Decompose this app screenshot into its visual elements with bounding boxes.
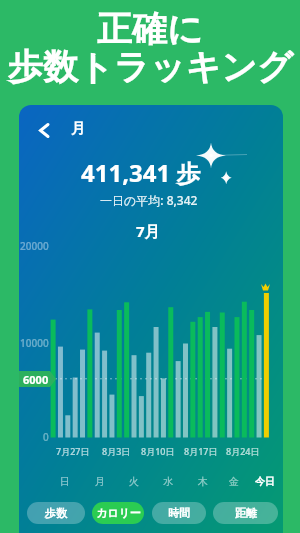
- staticText: 金: [229, 475, 239, 488]
- button[interactable]: 日: [55, 475, 75, 488]
- staticText: 7月: [136, 221, 160, 241]
- staticText: 月: [95, 475, 105, 488]
- staticText: 8月3日: [102, 445, 131, 457]
- button[interactable]: 時間: [152, 502, 206, 524]
- button[interactable]: 火: [124, 475, 144, 488]
- button[interactable]: 歩数: [27, 502, 85, 524]
- staticText: 411,341 歩: [81, 156, 201, 189]
- staticText: 歩数: [45, 506, 67, 520]
- staticText: 8月10日: [141, 445, 175, 457]
- staticText: 0: [43, 430, 49, 444]
- button[interactable]: 今日: [251, 475, 279, 488]
- staticText: 時間: [168, 506, 190, 520]
- staticText: 20000: [20, 239, 49, 253]
- staticText: 水: [163, 475, 173, 488]
- button[interactable]: 距離: [213, 502, 278, 524]
- staticText: 日: [60, 475, 70, 488]
- staticText: 一日の平均: 8,342: [100, 192, 198, 208]
- staticText: カロリー: [96, 506, 141, 520]
- staticText: 今日: [255, 475, 275, 488]
- staticText: 6000: [23, 372, 49, 387]
- button[interactable]: 金: [224, 475, 244, 488]
- staticText: 火: [129, 475, 139, 488]
- staticText: 7月27日: [56, 445, 90, 457]
- staticText: 8月17日: [184, 445, 218, 457]
- staticText: 10000: [20, 336, 49, 350]
- button[interactable]: 水: [158, 475, 178, 488]
- staticText: 8月24日: [226, 445, 260, 457]
- staticText: 木: [198, 475, 208, 488]
- staticText: 距離: [235, 506, 257, 520]
- staticText: 歩数トラッキング: [8, 45, 293, 89]
- button[interactable]: 月: [71, 120, 85, 138]
- button[interactable]: [33, 118, 57, 142]
- button[interactable]: カロリー: [92, 502, 144, 524]
- staticText: 月: [71, 120, 85, 138]
- button[interactable]: 木: [193, 475, 213, 488]
- staticText: 正確に: [97, 7, 203, 51]
- button[interactable]: 月: [90, 475, 110, 488]
